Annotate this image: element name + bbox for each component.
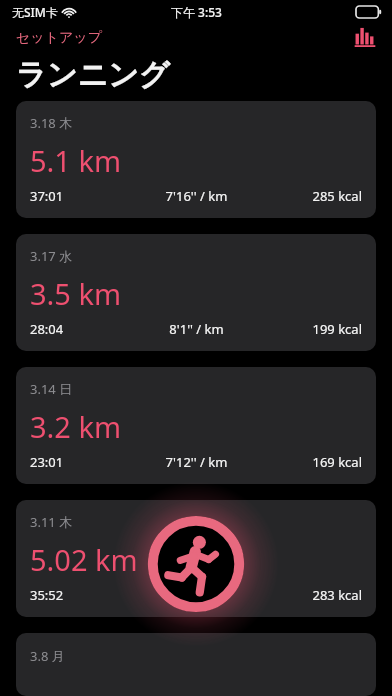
staticText: ランニング bbox=[16, 56, 170, 94]
staticText: 无SIM卡 bbox=[12, 4, 58, 20]
staticText: 35:52 bbox=[30, 586, 136, 604]
button[interactable]: Statistics bbox=[352, 27, 392, 49]
staticText: 37:01 bbox=[30, 187, 136, 205]
button[interactable]: セットアップ bbox=[0, 27, 110, 49]
button[interactable]: 3.8 月 bbox=[16, 633, 376, 696]
button[interactable]: 3.17 水 bbox=[16, 234, 376, 351]
staticText: 5.02 km bbox=[30, 540, 138, 579]
button[interactable]: 3.14 日 bbox=[16, 367, 376, 484]
staticText: 7'16'' / km bbox=[136, 187, 257, 205]
staticText: 3.18 木 bbox=[30, 114, 73, 132]
staticText: 285 kcal bbox=[257, 187, 362, 205]
staticText: 7'12'' / km bbox=[136, 453, 257, 471]
staticText: 7'9'' / km bbox=[136, 586, 257, 604]
staticText: 3.8 月 bbox=[30, 647, 65, 665]
staticText: 8'1'' / km bbox=[136, 320, 257, 338]
staticText: 下午 3:53 bbox=[171, 4, 222, 20]
staticText: 3.14 日 bbox=[30, 380, 73, 398]
staticText: 3.11 木 bbox=[30, 513, 73, 531]
staticText: 199 kcal bbox=[257, 320, 362, 338]
button[interactable]: Start running bbox=[116, 484, 276, 644]
staticText: セットアップ bbox=[16, 29, 102, 47]
staticText: 23:01 bbox=[30, 453, 136, 471]
staticText: 3.2 km bbox=[30, 407, 122, 446]
staticText: 3.5 km bbox=[30, 274, 122, 313]
staticText: 169 kcal bbox=[257, 453, 362, 471]
staticText: 5.1 km bbox=[30, 141, 122, 180]
staticText: 28:04 bbox=[30, 320, 136, 338]
button[interactable]: 3.18 木 bbox=[16, 101, 376, 218]
staticText: 3.17 水 bbox=[30, 247, 73, 265]
button[interactable]: 3.11 木 bbox=[16, 500, 376, 617]
staticText: 283 kcal bbox=[257, 586, 362, 604]
